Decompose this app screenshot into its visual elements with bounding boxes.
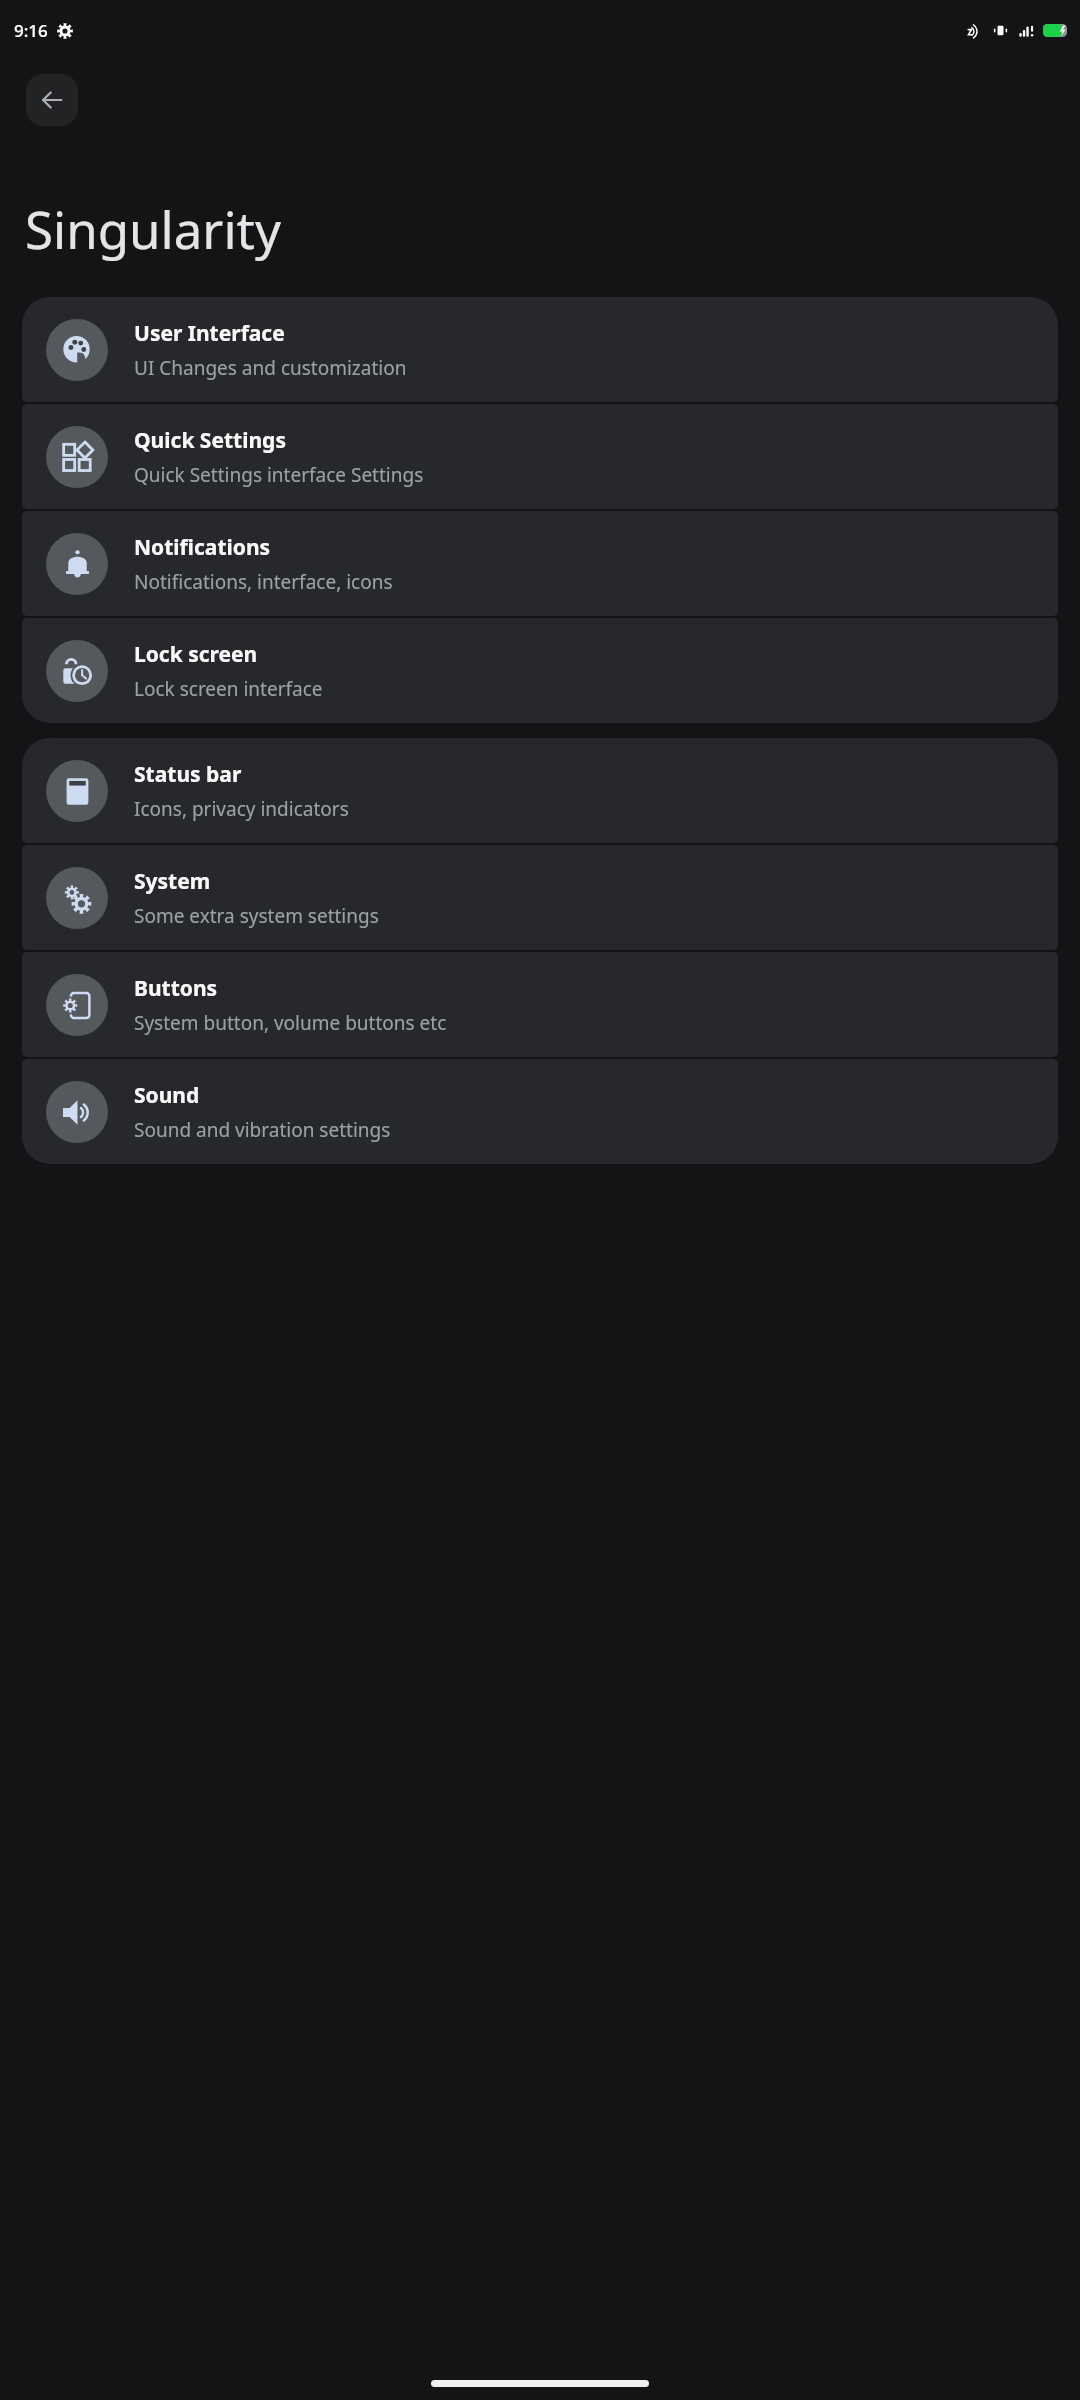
- button[interactable]: Buttons: [22, 952, 1058, 1057]
- button[interactable]: System: [22, 845, 1058, 950]
- staticText: Icons, privacy indicators: [134, 796, 349, 822]
- staticText: Some extra system settings: [134, 903, 379, 929]
- staticText: Quick Settings: [134, 426, 286, 455]
- staticText: System button, volume buttons etc: [134, 1010, 447, 1036]
- button[interactable]: User Interface: [22, 297, 1058, 402]
- staticText: User Interface: [134, 319, 285, 348]
- staticText: Sound: [134, 1081, 200, 1110]
- staticText: Lock screen interface: [134, 676, 323, 702]
- staticText: Notifications, interface, icons: [134, 569, 393, 595]
- staticText: Singularity: [25, 194, 281, 263]
- staticText: Quick Settings interface Settings: [134, 462, 424, 488]
- button[interactable]: Lock screen: [22, 618, 1058, 723]
- staticText: System: [134, 867, 211, 896]
- staticText: Status bar: [134, 760, 242, 789]
- staticText: UI Changes and customization: [134, 355, 407, 381]
- button[interactable]: Sound: [22, 1059, 1058, 1164]
- button[interactable]: Back: [26, 74, 78, 126]
- staticText: Sound and vibration settings: [134, 1117, 391, 1143]
- button[interactable]: Quick Settings: [22, 404, 1058, 509]
- button[interactable]: Status bar: [22, 738, 1058, 843]
- staticText: 9:16: [14, 19, 48, 42]
- staticText: Buttons: [134, 974, 218, 1003]
- staticText: Notifications: [134, 533, 271, 562]
- button[interactable]: Notifications: [22, 511, 1058, 616]
- staticText: Lock screen: [134, 640, 258, 669]
